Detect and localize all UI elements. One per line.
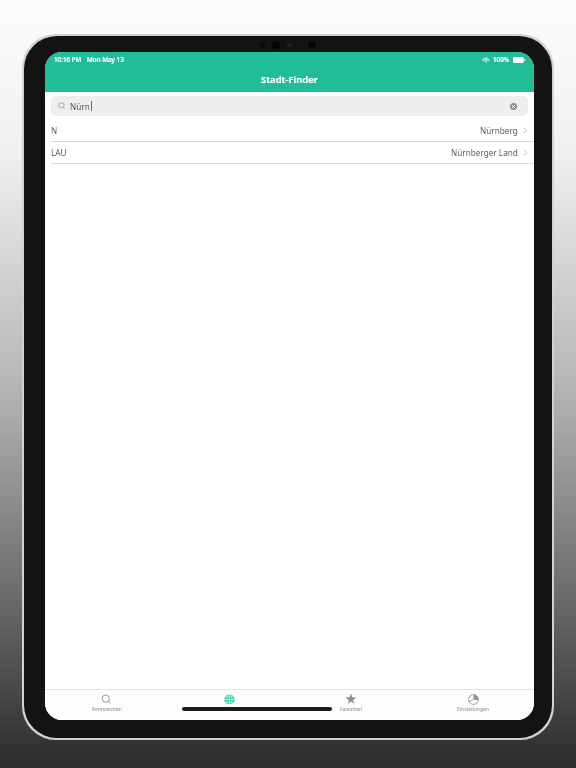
staticText: Stadt-Finder [261,73,318,86]
staticText: Favoriten [340,706,363,713]
button[interactable]: Kennzeichen [45,690,168,720]
staticText: Nürn [70,101,90,112]
staticText: Einstellungen [457,706,489,713]
staticText: Mon May 13 [87,55,124,64]
button[interactable]: Einstellungen [412,690,534,720]
button[interactable]: Nürn [51,96,528,116]
staticText: 100% [493,55,510,64]
button[interactable]: Clear search text [505,98,521,114]
staticText: N [51,125,58,136]
staticText: Stadt [223,706,236,713]
staticText: Kennzeichen [92,706,122,713]
staticText: LAU [51,147,67,158]
staticText: 10:16 PM [54,55,82,64]
button[interactable]: Stadt [168,690,290,720]
button[interactable]: N [45,120,534,142]
staticText: Nürnberger Land [451,147,518,158]
button[interactable]: LAU [45,142,534,164]
button[interactable]: Favoriten [290,690,412,720]
staticText: Nürnberg [480,125,518,136]
